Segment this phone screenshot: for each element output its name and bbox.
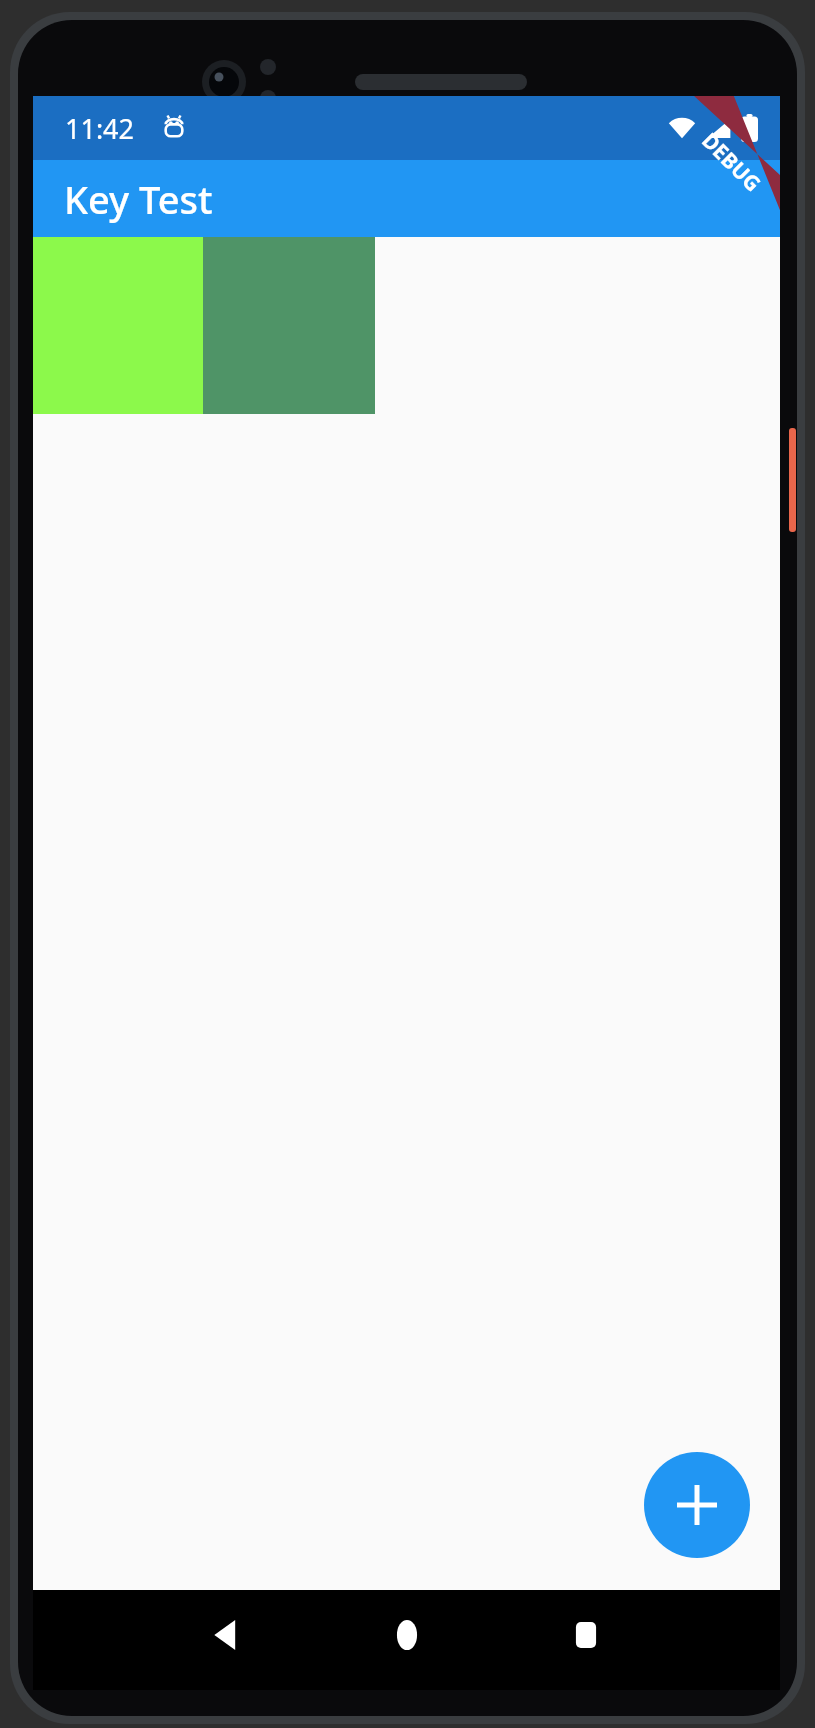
staticText: DEBUG [695, 126, 767, 198]
staticText: 11:42 [65, 110, 135, 147]
button[interactable]: Key Test [33, 160, 780, 237]
button[interactable]: Recent apps [511, 1590, 661, 1680]
button[interactable]: Home [332, 1590, 482, 1680]
staticText: Key Test [64, 173, 213, 225]
button[interactable]: Add [644, 1452, 750, 1558]
button[interactable]: Back [153, 1590, 303, 1680]
